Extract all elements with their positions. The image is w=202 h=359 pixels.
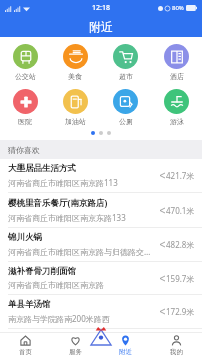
staticText: 159.7米 xyxy=(166,273,195,284)
button[interactable]: 锦川火锅 xyxy=(0,227,202,261)
button[interactable]: 服务 xyxy=(50,332,100,359)
staticText: 河南省商丘市睢阳区南京路与归德路交… xyxy=(8,246,151,257)
staticText: 超市 xyxy=(119,72,133,81)
button[interactable]: 公厕 xyxy=(100,87,151,128)
staticText: 河南省商丘市睢阳区南京路113 xyxy=(8,177,118,188)
staticText: 加油站 xyxy=(65,117,86,126)
staticText: 公厕 xyxy=(119,117,133,126)
button[interactable]: 超市 xyxy=(100,42,151,83)
button[interactable]: 滋补脊骨刀削面馆 xyxy=(0,261,202,294)
staticText: 80% xyxy=(172,4,184,12)
button[interactable]: 大壆居品生活方式 xyxy=(0,159,202,192)
staticText: 470.1米 xyxy=(166,205,195,216)
staticText: 美食 xyxy=(68,72,82,81)
button[interactable]: 医院 xyxy=(0,87,50,128)
staticText: 单县羊汤馆 xyxy=(8,299,51,310)
staticText: 482.8米 xyxy=(166,239,195,250)
staticText: 游泳 xyxy=(170,117,184,126)
button[interactable]: 附近 xyxy=(100,332,151,359)
button[interactable]: 首页 xyxy=(0,332,50,359)
staticText: 酒店 xyxy=(170,72,184,81)
staticText: 大壆居品生活方式 xyxy=(8,163,76,174)
staticText: 服务 xyxy=(69,348,82,356)
staticText: 首页 xyxy=(19,348,32,356)
staticText: 猜你喜欢 xyxy=(8,145,40,155)
staticText: 河南省商丘市睢阳区南京东路133 xyxy=(8,212,126,223)
staticText: 南京路与学院路南200米路西 xyxy=(8,313,110,324)
staticText: 滋补脊骨刀削面馆 xyxy=(8,266,76,277)
staticText: 172.9米 xyxy=(166,306,195,317)
button[interactable]: 我的 xyxy=(151,332,202,359)
button[interactable]: 古虞国羊肉汤 xyxy=(0,328,202,332)
button[interactable]: 美食 xyxy=(50,42,100,83)
staticText: 421.7米 xyxy=(166,170,195,181)
staticText: 我的 xyxy=(170,348,183,356)
staticText: 12:18 xyxy=(92,3,110,13)
button[interactable]: 单县羊汤馆 xyxy=(0,294,202,328)
staticText: 锦川火锅 xyxy=(8,232,42,243)
staticText: 公交站 xyxy=(15,72,36,81)
button[interactable]: 公交站 xyxy=(0,42,50,83)
button[interactable]: 酒店 xyxy=(151,42,202,83)
button[interactable]: 樱桃里音乐餐厅(南京路店) xyxy=(0,192,202,227)
staticText: 樱桃里音乐餐厅(南京路店) xyxy=(8,197,108,209)
button[interactable]: 游泳 xyxy=(151,87,202,128)
staticText: 医院 xyxy=(18,117,32,126)
staticText: 附近 xyxy=(119,348,132,356)
staticText: 河南省商丘市睢阳区南京路 xyxy=(8,280,104,290)
staticText: 附近 xyxy=(89,19,113,34)
button[interactable]: 加油站 xyxy=(50,87,100,128)
